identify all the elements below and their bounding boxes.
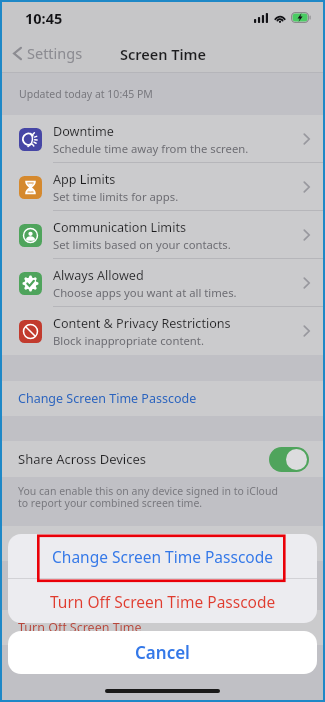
staticText: Set time limits for apps. (53, 189, 179, 204)
button[interactable]: Content & Privacy Restrictions (2, 307, 323, 355)
button[interactable]: Settings (2, 38, 91, 68)
staticText: Turn Off Screen Time (18, 619, 142, 636)
staticText: Change Screen Time Passcode (18, 390, 197, 407)
staticText: Set limits based on your contacts. (53, 237, 231, 252)
staticText: Screen Time (120, 44, 206, 64)
button[interactable]: Turn Off Screen Time Passcode (2, 526, 323, 561)
staticText: Settings (27, 43, 83, 63)
staticText: Change Screen Time Passcode (52, 546, 273, 567)
staticText: App Limits (53, 171, 116, 188)
button[interactable]: Communication Limits (2, 211, 323, 259)
staticText: Content & Privacy Restrictions (53, 315, 231, 332)
staticText: Communication Limits (53, 219, 186, 236)
button[interactable]: Turn Off Screen Time (2, 610, 323, 645)
staticText: Block inappropriate content. (53, 333, 204, 348)
button[interactable]: Cancel (8, 631, 317, 674)
staticText: Turn Off Screen Time Passcode (18, 535, 200, 552)
staticText: Share Across Devices (18, 450, 146, 468)
button[interactable]: App Limits (2, 163, 323, 211)
button[interactable]: Change Screen Time Passcode (2, 381, 323, 416)
staticText: 10:45 (25, 8, 63, 28)
button[interactable]: Downtime (2, 115, 323, 163)
staticText: Turn Off Screen Time Passcode (50, 591, 276, 612)
staticText: Updated today at 10:45 PM (19, 87, 153, 101)
staticText: Cancel (135, 641, 190, 664)
staticText: Downtime (53, 123, 114, 140)
staticText: Always Allowed (53, 267, 144, 284)
staticText: Schedule time away from the screen. (53, 141, 249, 156)
button[interactable]: Change Screen Time Passcode (8, 534, 317, 578)
staticText: You can enable this on any device signed… (18, 484, 289, 510)
staticText: Choose apps you want at all times. (53, 285, 237, 300)
button[interactable]: Always Allowed (2, 259, 323, 307)
button[interactable]: Turn Off Screen Time Passcode (8, 579, 317, 623)
button[interactable]: Share Across Devices toggle (269, 447, 309, 472)
